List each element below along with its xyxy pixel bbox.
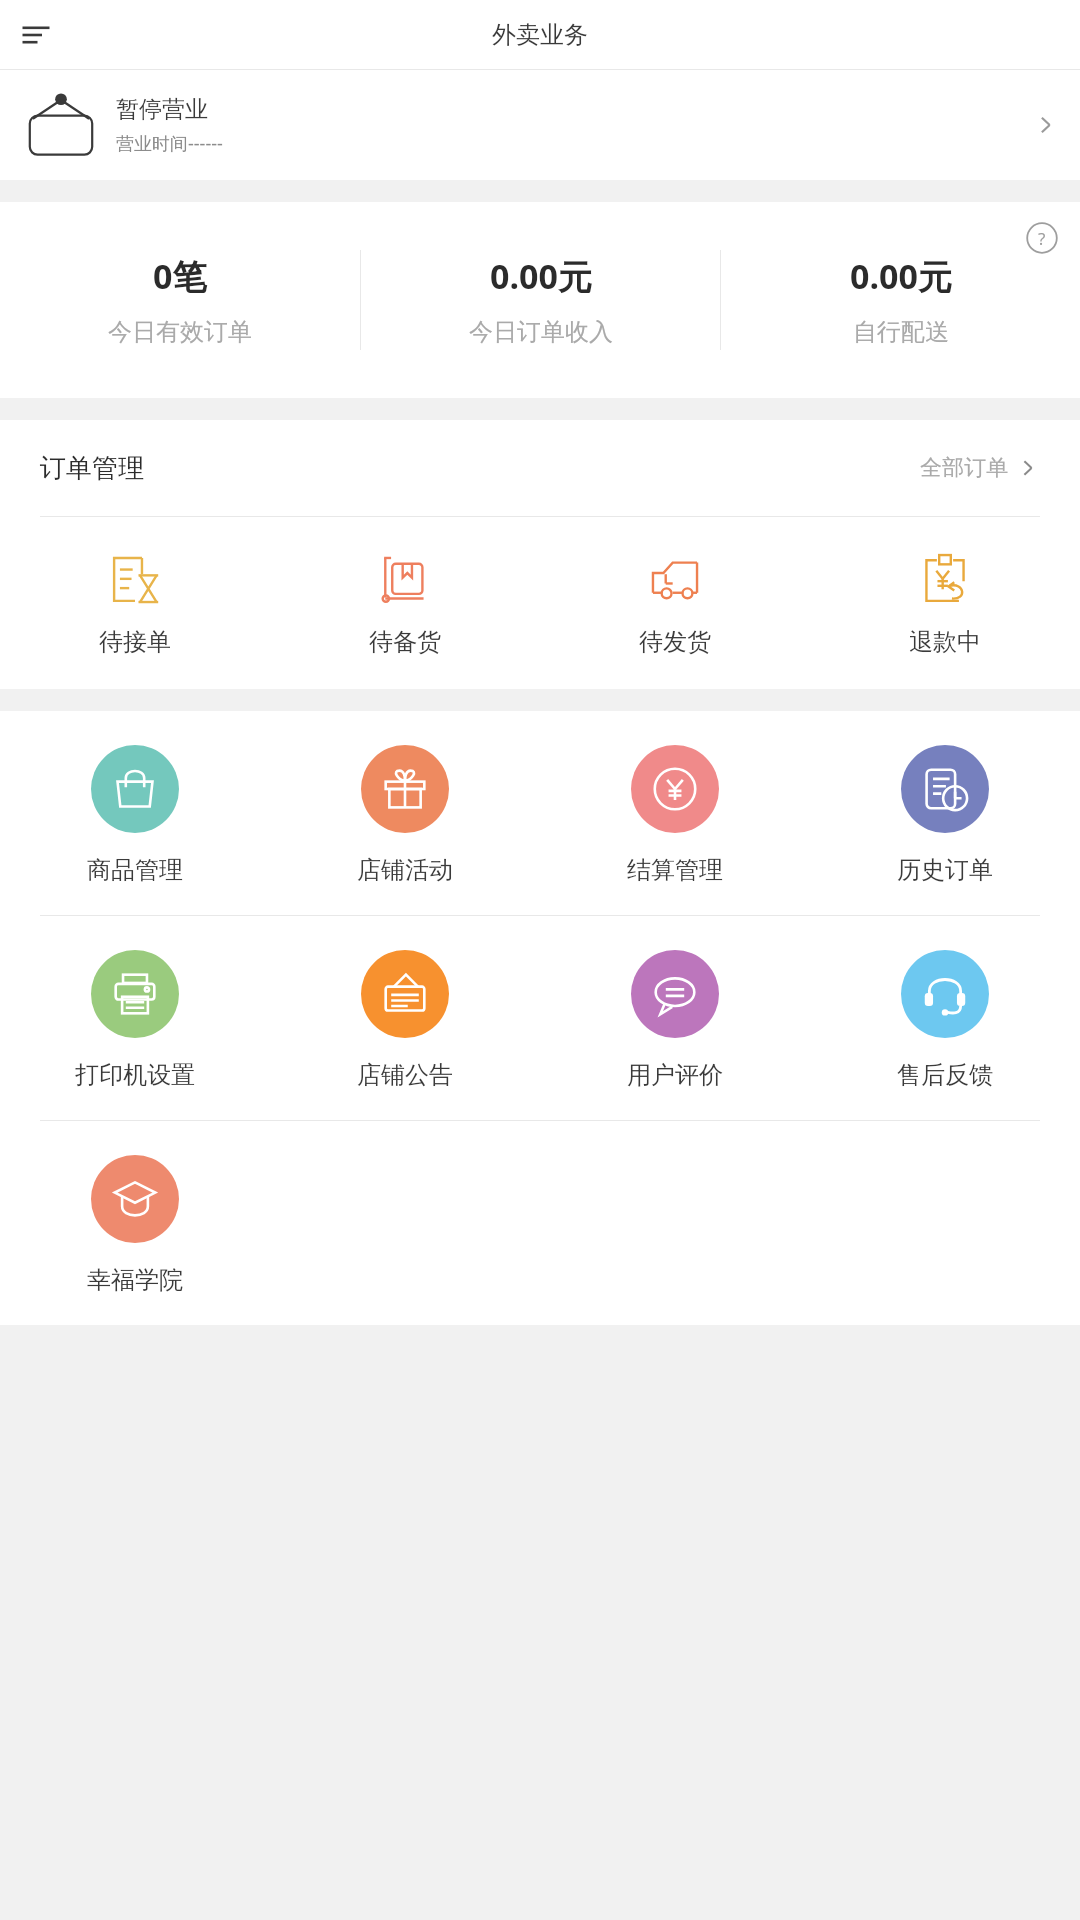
button[interactable]: 结算管理 — [540, 745, 810, 885]
staticText: 商品管理 — [87, 855, 183, 885]
staticText: ? — [1038, 227, 1046, 250]
button[interactable]: 店铺公告 — [270, 950, 540, 1090]
button[interactable]: 暂停营业 — [0, 70, 1080, 180]
staticText: 幸福学院 — [87, 1265, 183, 1295]
staticText: 0.00元 — [850, 253, 952, 299]
button[interactable]: 历史订单 — [810, 745, 1080, 885]
staticText: 今日订单收入 — [469, 317, 613, 347]
button[interactable]: 全部订单 — [920, 454, 1040, 482]
button[interactable]: 用户评价 — [540, 950, 810, 1090]
staticText: 暂停营业 — [116, 95, 208, 124]
staticText: 店铺活动 — [357, 855, 453, 885]
button[interactable]: 待接单 — [0, 551, 270, 657]
staticText: 订单管理 — [40, 452, 144, 485]
button[interactable]: 幸福学院 — [0, 1155, 270, 1295]
button[interactable]: 店铺活动 — [270, 745, 540, 885]
staticText: 打印机设置 — [75, 1060, 195, 1090]
staticText: 今日有效订单 — [108, 317, 252, 347]
button[interactable]: 待发货 — [540, 551, 810, 657]
staticText: 待接单 — [99, 627, 171, 657]
staticText: 待备货 — [369, 627, 441, 657]
staticText: 营业时间------ — [116, 131, 223, 156]
button[interactable]: 0.00元 — [721, 253, 1080, 347]
staticText: 全部订单 — [920, 454, 1008, 482]
button[interactable]: 0.00元 — [361, 253, 720, 347]
staticText: 0笔 — [153, 253, 207, 299]
button[interactable]: 0笔 — [0, 253, 360, 347]
staticText: 0.00元 — [490, 253, 592, 299]
button[interactable]: 待备货 — [270, 551, 540, 657]
staticText: 待发货 — [639, 627, 711, 657]
staticText: 用户评价 — [627, 1060, 723, 1090]
staticText: 退款中 — [909, 627, 981, 657]
staticText: 店铺公告 — [357, 1060, 453, 1090]
button[interactable]: 售后反馈 — [810, 950, 1080, 1090]
button[interactable]: 商品管理 — [0, 745, 270, 885]
staticText: 外卖业务 — [492, 20, 588, 50]
button[interactable]: 退款中 — [810, 551, 1080, 657]
staticText: 售后反馈 — [897, 1060, 993, 1090]
button[interactable]: Menu — [8, 7, 64, 63]
staticText: 历史订单 — [897, 855, 993, 885]
button[interactable]: Help — [1022, 218, 1062, 258]
staticText: 结算管理 — [627, 855, 723, 885]
button[interactable]: 打印机设置 — [0, 950, 270, 1090]
staticText: 自行配送 — [853, 317, 949, 347]
